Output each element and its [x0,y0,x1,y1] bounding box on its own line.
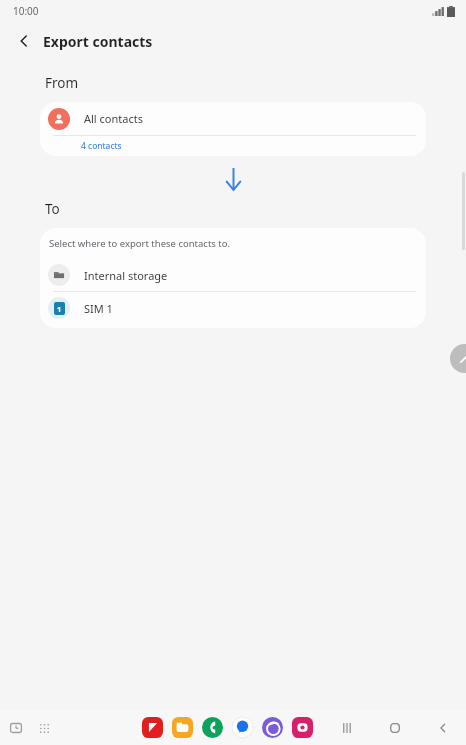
button[interactable]: Back [10,27,38,55]
button[interactable]: Samsung Internet [262,717,283,738]
button[interactable]: Back [432,717,454,739]
button[interactable]: Internal storage [40,259,426,291]
button[interactable]: Messages [232,717,253,738]
staticText: SIM 1 [84,301,113,316]
button[interactable]: Instagram [292,717,313,738]
button[interactable]: Edit [450,344,466,373]
button[interactable]: Flipboard [142,717,163,738]
button[interactable]: 1 [40,292,426,324]
button[interactable]: Recents panel [6,718,26,738]
button[interactable]: All contacts [40,102,426,135]
button[interactable]: Recents [336,717,358,739]
staticText: 4 contacts [81,140,122,152]
button[interactable]: All apps [34,718,54,738]
button[interactable]: Home [384,717,406,739]
staticText: 10:00 [13,4,39,18]
staticText: To [45,200,60,218]
staticText: 1 [57,304,62,314]
button[interactable]: My Files [172,717,193,738]
staticText: Export contacts [43,32,153,51]
staticText: Select where to export these contacts to… [49,237,231,250]
staticText: All contacts [84,111,143,126]
staticText: From [45,74,79,92]
button[interactable]: Phone [202,717,223,738]
staticText: Internal storage [84,268,168,283]
